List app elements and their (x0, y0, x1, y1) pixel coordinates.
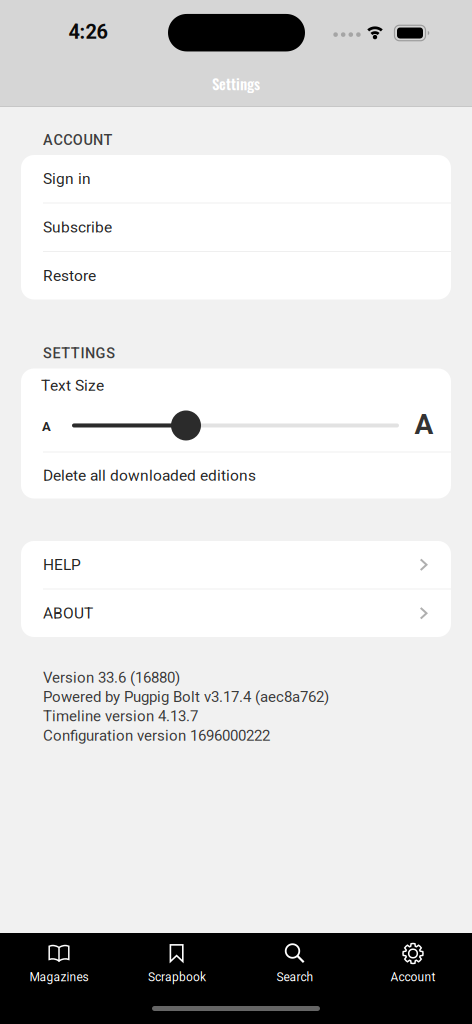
staticText: A (42, 419, 51, 434)
staticText: HELP (43, 556, 81, 574)
staticText: 4:26 (68, 20, 107, 44)
staticText: Text Size (41, 376, 104, 395)
button[interactable]: Restore (21, 252, 451, 299)
staticText: Scrapbook (148, 970, 206, 984)
button[interactable]: HELP (21, 541, 451, 588)
staticText: ABOUT (43, 604, 93, 622)
staticText: Search (276, 970, 313, 984)
staticText: Delete all downloaded editions (43, 466, 256, 485)
button[interactable]: ABOUT (21, 589, 451, 637)
button[interactable]: Sign in (21, 155, 451, 202)
staticText: A (414, 408, 433, 441)
staticText: SETTINGS (43, 345, 115, 362)
button[interactable]: Account (354, 943, 472, 984)
staticText: Subscribe (43, 218, 112, 236)
staticText: Powered by Pugpig Bolt v3.17.4 (aec8a762… (43, 688, 329, 706)
staticText: Magazines (29, 970, 88, 984)
staticText: Restore (43, 267, 96, 285)
staticText: Account (390, 970, 435, 984)
staticText: ACCOUNT (43, 131, 113, 148)
staticText: Version 33.6 (16880) (43, 669, 180, 686)
button[interactable]: Scrapbook (118, 943, 236, 984)
staticText: Settings (212, 73, 260, 94)
staticText: Timeline version 4.13.7 (43, 707, 198, 725)
button[interactable]: Text size (171, 410, 201, 440)
button[interactable]: Delete all downloaded editions (21, 452, 451, 498)
staticText: Configuration version 1696000222 (43, 727, 270, 744)
staticText: Sign in (43, 170, 91, 188)
button[interactable]: Search (236, 943, 354, 984)
button[interactable]: Subscribe (21, 203, 451, 251)
button[interactable]: Magazines (0, 943, 118, 984)
